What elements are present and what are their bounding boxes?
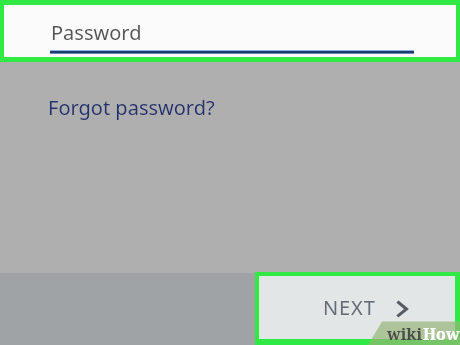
staticText: Forgot password? [48,94,215,121]
staticText: How [423,323,460,345]
staticText: NEXT [323,294,376,321]
button[interactable]: Forgot password? [48,94,215,121]
staticText: wiki [387,323,423,345]
staticText: Password [51,19,142,46]
other: Next [397,301,408,317]
button[interactable]: Password [0,0,460,62]
button[interactable]: NEXT [255,272,460,345]
